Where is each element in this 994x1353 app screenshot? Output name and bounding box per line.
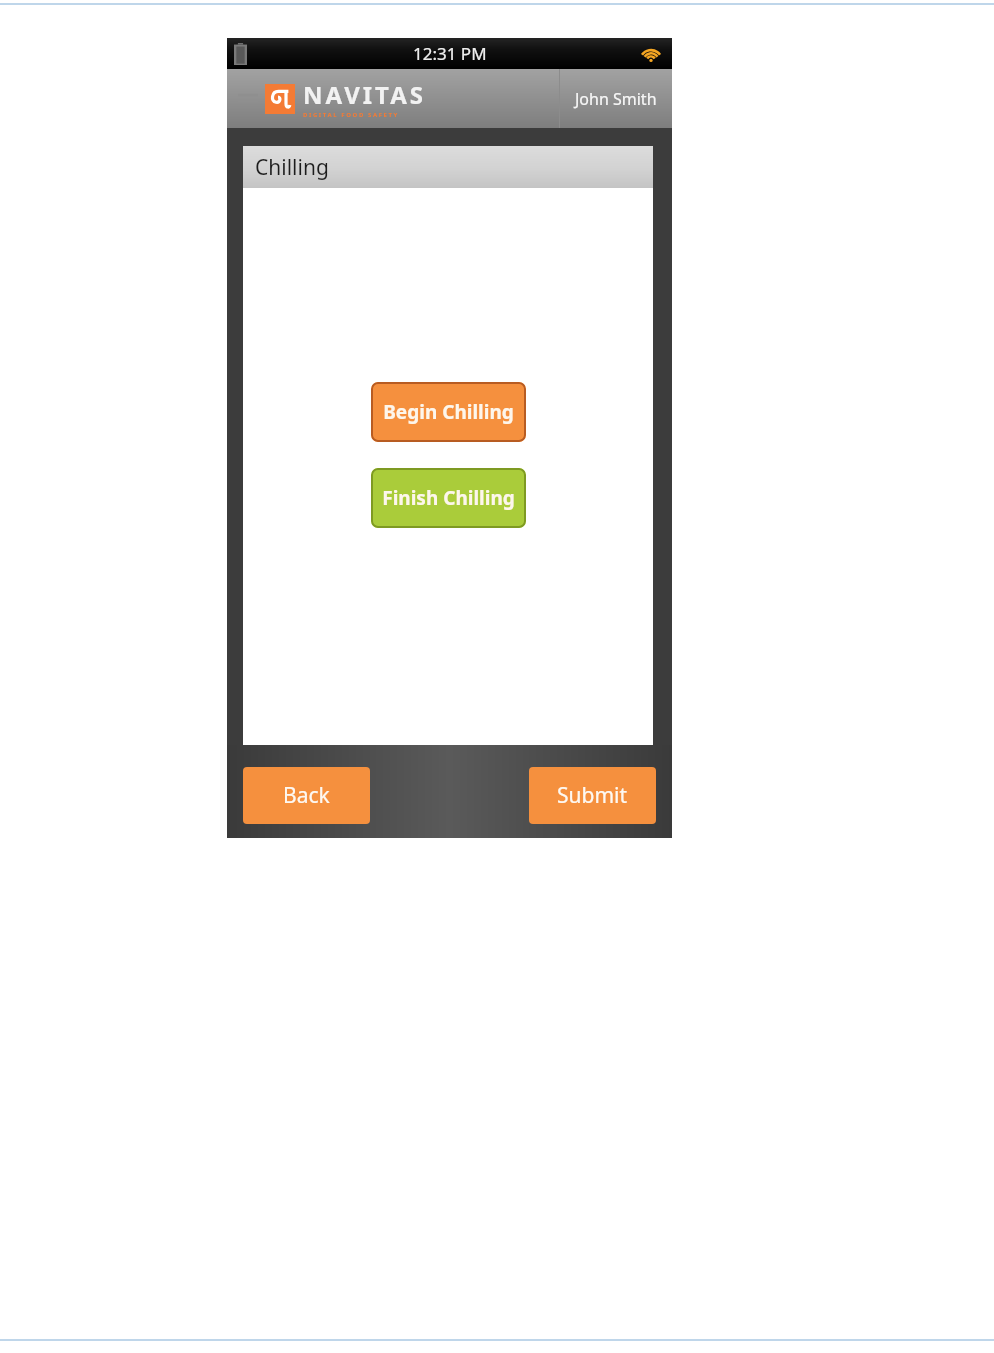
button[interactable]: Submit bbox=[529, 767, 656, 824]
staticText: 12:31 PM bbox=[413, 42, 487, 65]
button[interactable]: Begin Chilling bbox=[371, 382, 526, 442]
button[interactable]: Back bbox=[243, 767, 370, 824]
staticText: Chilling bbox=[255, 153, 329, 182]
staticText: Finish Chilling bbox=[382, 485, 515, 511]
staticText: Back bbox=[283, 781, 330, 810]
button[interactable]: Finish Chilling bbox=[371, 468, 526, 528]
staticText: Submit bbox=[557, 781, 628, 810]
staticText: Begin Chilling bbox=[383, 399, 514, 425]
staticText: John Smith bbox=[575, 88, 657, 110]
staticText: DIGITAL FOOD SAFETY bbox=[303, 111, 399, 119]
button[interactable]: NAVITAS bbox=[265, 78, 427, 119]
staticText: NAVITAS bbox=[303, 78, 427, 111]
button[interactable]: John Smith bbox=[560, 69, 672, 128]
